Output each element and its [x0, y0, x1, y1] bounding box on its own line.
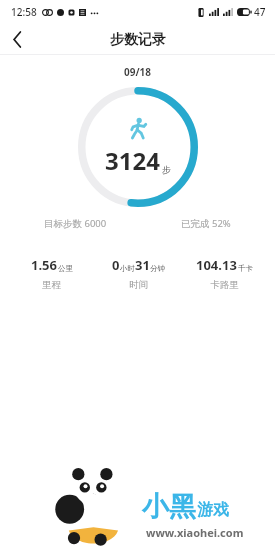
button[interactable]: 104.13	[181, 254, 267, 293]
staticText: 小黑	[142, 490, 196, 524]
staticText: 小时	[120, 264, 135, 273]
staticText: 分钟	[150, 264, 165, 273]
staticText: 游戏	[197, 500, 229, 520]
staticText: 3124	[105, 144, 160, 177]
button[interactable]: Back	[0, 24, 34, 55]
staticText: 已完成 52%	[181, 217, 231, 230]
staticText: 12:58	[11, 5, 37, 19]
staticText: 目标步数 6000	[44, 217, 107, 230]
staticText: 09/18	[124, 65, 152, 79]
staticText: 公里	[58, 264, 73, 273]
button[interactable]: 1.56	[8, 254, 95, 293]
staticText: 时间	[129, 279, 148, 291]
staticText: 1.56	[31, 256, 57, 274]
staticText: 步数记录	[110, 31, 166, 49]
staticText: 里程	[42, 279, 61, 291]
staticText: 47	[254, 5, 266, 19]
staticText: 千卡	[238, 264, 253, 273]
staticText: 0	[112, 256, 120, 274]
staticText: 104.13	[196, 256, 237, 274]
button[interactable]: 0	[95, 254, 181, 293]
staticText: www.xiaohei.com	[146, 525, 244, 540]
staticText: 步	[162, 164, 171, 175]
staticText: 卡路里	[210, 279, 239, 291]
staticText: 31	[135, 256, 150, 274]
